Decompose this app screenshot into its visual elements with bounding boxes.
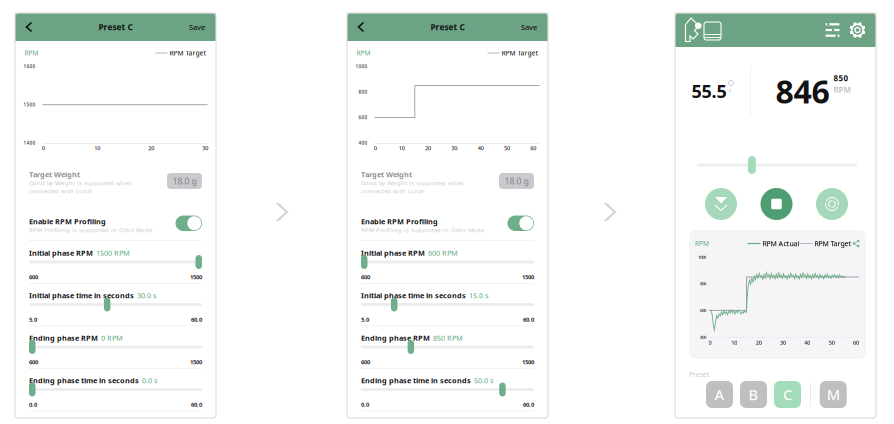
staticText: RPM	[833, 84, 851, 95]
staticText: 20	[425, 144, 431, 152]
button[interactable]: Save	[497, 13, 548, 41]
staticText: 600	[358, 114, 367, 120]
staticText: 1400	[23, 140, 35, 146]
staticText: 10	[731, 339, 737, 346]
staticText: 846	[775, 70, 829, 112]
staticText: 600	[29, 273, 38, 281]
staticText: 60	[530, 144, 536, 152]
staticText: 800	[700, 281, 706, 286]
staticText: 0	[708, 339, 711, 346]
button[interactable]: Back	[15, 13, 43, 41]
staticText: 400	[358, 140, 367, 146]
staticText: Preset	[689, 370, 709, 379]
button[interactable]: Enable RPM Profiling	[507, 215, 534, 231]
staticText: 600	[361, 273, 370, 281]
button[interactable]: Settings	[845, 13, 876, 47]
staticText: 1500 RPM	[96, 248, 130, 258]
staticText: Ending phase time in seconds	[29, 376, 139, 385]
button[interactable]: Decrease	[705, 188, 737, 220]
staticText: 850	[833, 73, 848, 83]
staticText: RPM Target	[167, 49, 206, 57]
staticText: Preset C	[98, 21, 132, 33]
staticText: 30	[780, 339, 786, 346]
staticText: Grind by Weight is supported when	[361, 179, 464, 187]
staticText: 1500	[190, 273, 202, 281]
staticText: 10	[94, 144, 100, 152]
staticText: Ending phase RPM	[361, 333, 430, 343]
staticText: RPM Target	[499, 49, 538, 57]
staticText: Save	[189, 22, 205, 32]
button[interactable]: C	[774, 381, 801, 408]
staticText: 15.0 s	[469, 291, 489, 300]
button[interactable]: Grinder	[675, 13, 746, 47]
staticText: s	[728, 86, 731, 93]
staticText: 850 RPM	[433, 333, 463, 343]
button[interactable]: A	[706, 381, 733, 408]
staticText: 1000	[698, 254, 706, 260]
staticText: 800	[358, 89, 367, 95]
staticText: 0.0 s	[142, 376, 158, 385]
staticText: 0.0	[29, 401, 37, 408]
staticText: Initial phase RPM	[29, 248, 93, 258]
staticText: Enable RPM Profiling	[361, 217, 438, 226]
staticText: RPM Profiling is supported in Orbit Mode	[29, 226, 152, 234]
staticText: 18.0 g	[172, 175, 196, 187]
staticText: RPM	[24, 49, 38, 57]
staticText: RPM Target	[812, 239, 851, 248]
staticText: connected with Lunar	[29, 187, 92, 195]
staticText: RPM Actual	[760, 239, 799, 248]
staticText: RPM Profiling is supported in Orbit Mode	[361, 226, 484, 234]
staticText: 20	[148, 144, 154, 152]
button[interactable]: Enable RPM Profiling	[175, 215, 202, 231]
staticText: 600	[361, 358, 370, 366]
staticText: Save	[521, 22, 537, 32]
staticText: 50	[504, 144, 510, 152]
staticText: 400	[700, 334, 706, 340]
staticText: 30	[202, 144, 208, 152]
staticText: Grind by Weight is supported when	[29, 179, 132, 187]
staticText: 50	[829, 339, 835, 346]
staticText: 600 RPM	[428, 248, 458, 258]
staticText: 60.0	[523, 316, 534, 323]
staticText: connected with Lunar	[361, 187, 424, 195]
staticText: 60.0	[191, 401, 202, 408]
staticText: 40	[804, 339, 810, 346]
staticText: Ending phase time in seconds	[361, 376, 471, 385]
button[interactable]: Back	[347, 13, 375, 41]
staticText: 0	[374, 144, 377, 152]
staticText: A	[714, 385, 724, 404]
staticText: 20	[756, 339, 762, 346]
staticText: 40	[478, 144, 484, 152]
staticText: 1500	[522, 358, 534, 366]
button[interactable]: B	[740, 381, 767, 408]
button[interactable]: M	[820, 381, 847, 408]
staticText: 1600	[23, 63, 35, 69]
button[interactable]: Adjust	[820, 13, 845, 47]
staticText: 600	[700, 307, 706, 313]
staticText: 10	[399, 144, 405, 152]
staticText: 5.0	[29, 316, 37, 323]
staticText: 60.0	[523, 401, 534, 408]
staticText: B	[748, 385, 758, 404]
staticText: 1500	[23, 102, 35, 108]
staticText: Initial phase time in seconds	[29, 291, 134, 300]
staticText: 1500	[190, 358, 202, 366]
staticText: Target Weight	[361, 170, 412, 179]
staticText: Preset C	[430, 21, 464, 33]
staticText: 600	[29, 358, 38, 366]
staticText: 50.0 s	[474, 376, 494, 385]
staticText: 60.0	[191, 316, 202, 323]
staticText: 30.0 s	[137, 291, 157, 300]
staticText: RPM	[695, 239, 709, 248]
staticText: 0 RPM	[101, 333, 123, 343]
staticText: C	[783, 385, 792, 404]
staticText: 18.0 g	[504, 175, 528, 187]
staticText: Ending phase RPM	[29, 333, 98, 343]
staticText: M	[827, 385, 840, 404]
button[interactable]: Purge	[816, 188, 848, 220]
staticText: Target Weight	[29, 170, 80, 179]
button[interactable]: Stop	[760, 188, 792, 220]
button[interactable]: Save	[165, 13, 216, 41]
staticText: Enable RPM Profiling	[29, 217, 106, 226]
staticText: 60	[853, 339, 859, 346]
